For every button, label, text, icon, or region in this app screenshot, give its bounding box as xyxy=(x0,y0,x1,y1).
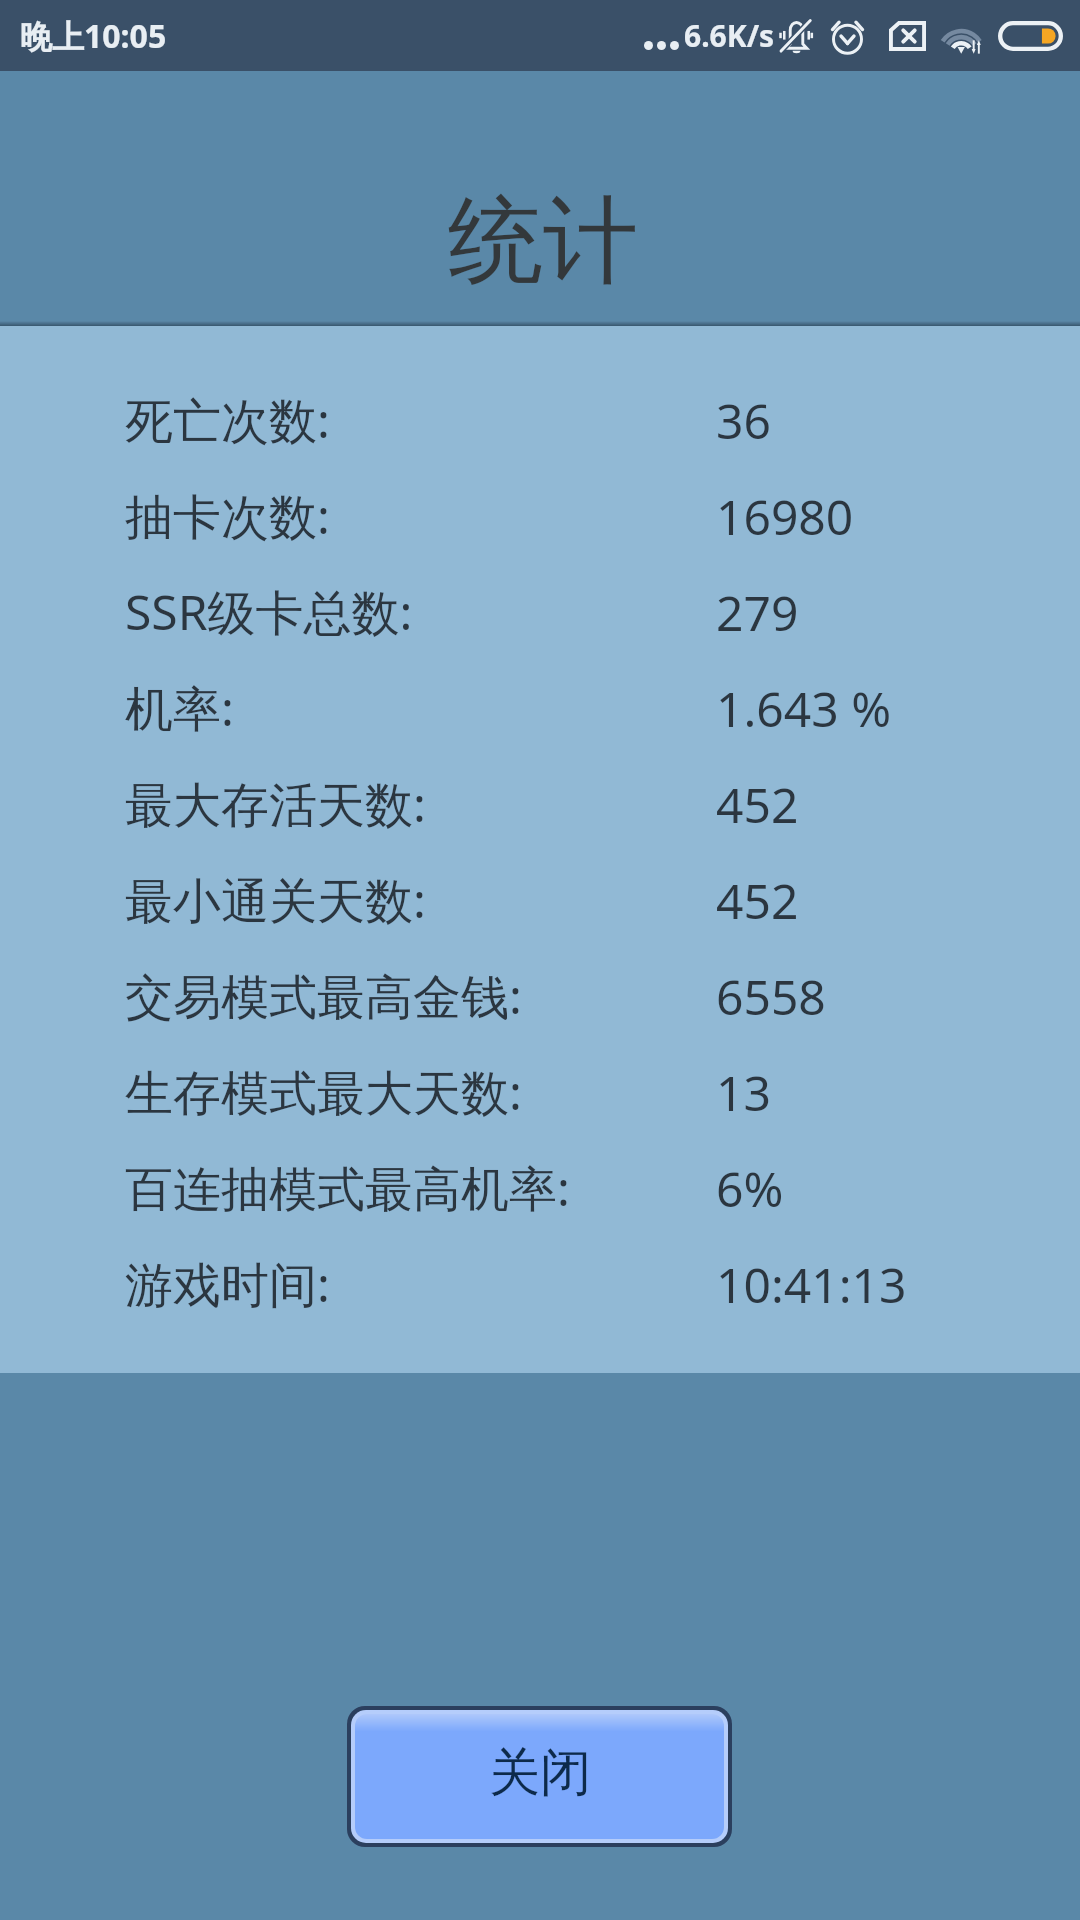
staticText: 关闭 xyxy=(489,1741,591,1805)
staticText: 6558 xyxy=(716,964,826,1029)
staticText: 百连抽模式最高机率: xyxy=(125,1155,570,1221)
staticText: 6.6K/s xyxy=(684,15,775,56)
staticText: 机率: xyxy=(125,675,234,741)
staticText: 1.643 % xyxy=(716,676,892,741)
staticText: 抽卡次数: xyxy=(125,483,330,549)
staticText: SSR级卡总数: xyxy=(125,579,413,645)
staticText: 统计 xyxy=(448,182,638,302)
staticText: 最大存活天数: xyxy=(125,771,426,837)
staticText: 10:41:13 xyxy=(716,1252,907,1317)
staticText: 452 xyxy=(716,772,799,837)
staticText: 生存模式最大天数: xyxy=(125,1059,522,1125)
button[interactable]: 关闭 xyxy=(355,1714,724,1839)
staticText: 279 xyxy=(716,580,799,645)
staticText: 游戏时间: xyxy=(125,1251,330,1317)
staticText: 最小通关天数: xyxy=(125,867,426,933)
staticText: 36 xyxy=(716,388,771,453)
staticText: 452 xyxy=(716,868,799,933)
staticText: 死亡次数: xyxy=(125,387,330,453)
staticText: 交易模式最高金钱: xyxy=(125,963,522,1029)
staticText: 13 xyxy=(716,1060,771,1125)
staticText: 晚上10:05 xyxy=(20,14,167,58)
staticText: 6% xyxy=(716,1156,784,1221)
staticText: 16980 xyxy=(716,484,854,549)
